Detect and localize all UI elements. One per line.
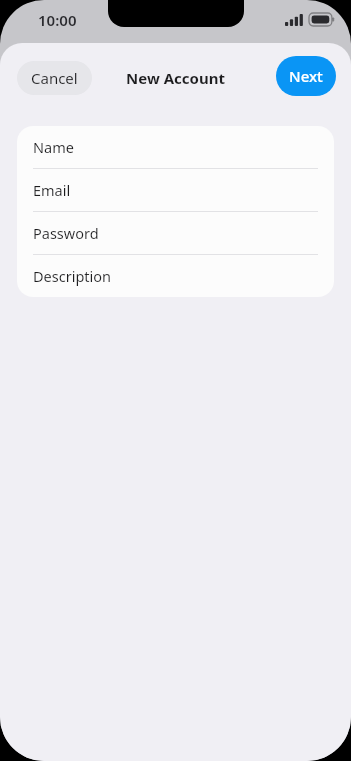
staticText: Cancel (31, 68, 78, 88)
staticText: Password (33, 223, 99, 243)
staticText: New Account (0, 68, 351, 88)
button[interactable]: Password (17, 212, 334, 254)
button[interactable]: Cancel (17, 61, 92, 95)
staticText: Next (289, 66, 323, 86)
staticText: Email (33, 180, 71, 200)
button[interactable]: Next (276, 56, 336, 96)
button[interactable]: Description (17, 255, 334, 297)
staticText: Description (33, 266, 112, 286)
button[interactable]: Email (17, 169, 334, 211)
button[interactable]: Name (17, 126, 334, 168)
staticText: Name (33, 137, 74, 157)
staticText: 10:00 (38, 10, 77, 30)
